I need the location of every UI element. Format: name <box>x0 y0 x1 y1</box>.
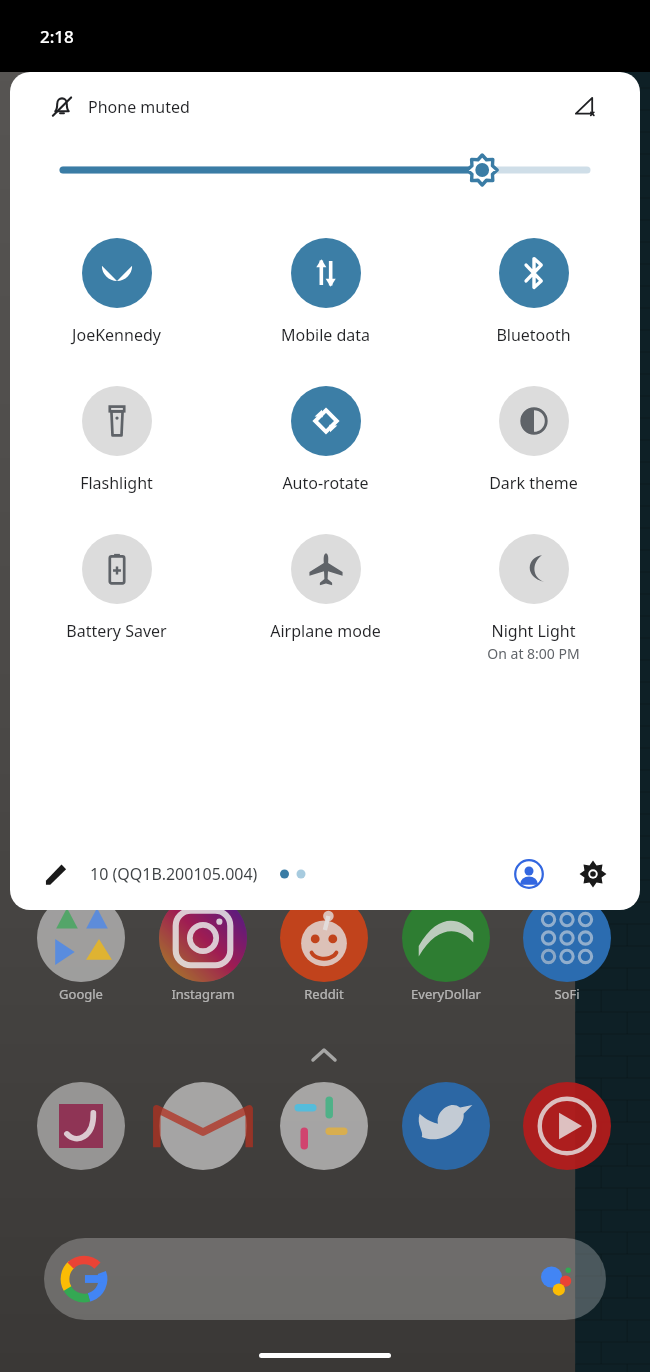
button[interactable]: Phone muted <box>48 89 192 125</box>
staticText: SoFi <box>507 985 627 1003</box>
staticText: 10 (QQ1B.200105.004) <box>90 863 258 885</box>
staticText: Battery Saver <box>14 620 219 642</box>
button[interactable]: JoeKennedy <box>14 234 219 350</box>
staticText: Bluetooth <box>431 324 636 346</box>
button[interactable]: Airplane mode <box>223 530 428 646</box>
staticText: Instagram <box>143 985 263 1003</box>
staticText: EveryDollar <box>386 985 506 1003</box>
staticText: On at 8:00 PM <box>431 644 636 663</box>
button[interactable]: Night Light <box>431 530 636 667</box>
staticText: Google <box>21 985 141 1003</box>
button[interactable]: Edit tiles <box>36 854 76 894</box>
staticText: JoeKennedy <box>14 324 219 346</box>
staticText: Auto-rotate <box>223 472 428 494</box>
staticText: Flashlight <box>14 472 219 494</box>
staticText: 2:18 <box>40 25 74 48</box>
button[interactable]: Dark theme <box>431 382 636 498</box>
button[interactable]: Flashlight <box>14 382 219 498</box>
staticText: Mobile data <box>223 324 428 346</box>
staticText: Dark theme <box>431 472 636 494</box>
button[interactable]: Bluetooth <box>431 234 636 350</box>
button[interactable]: No signal <box>568 90 602 124</box>
button[interactable]: Battery Saver <box>14 530 219 646</box>
button[interactable]: User <box>506 851 552 897</box>
button[interactable]: Auto-rotate <box>223 382 428 498</box>
button[interactable]: Mobile data <box>223 234 428 350</box>
staticText: Airplane mode <box>223 620 428 642</box>
staticText: Night Light <box>431 620 636 642</box>
button[interactable]: Settings <box>570 851 616 897</box>
staticText: Reddit <box>264 985 384 1003</box>
button[interactable]: Brightness <box>63 142 587 198</box>
staticText: Phone muted <box>88 96 190 118</box>
